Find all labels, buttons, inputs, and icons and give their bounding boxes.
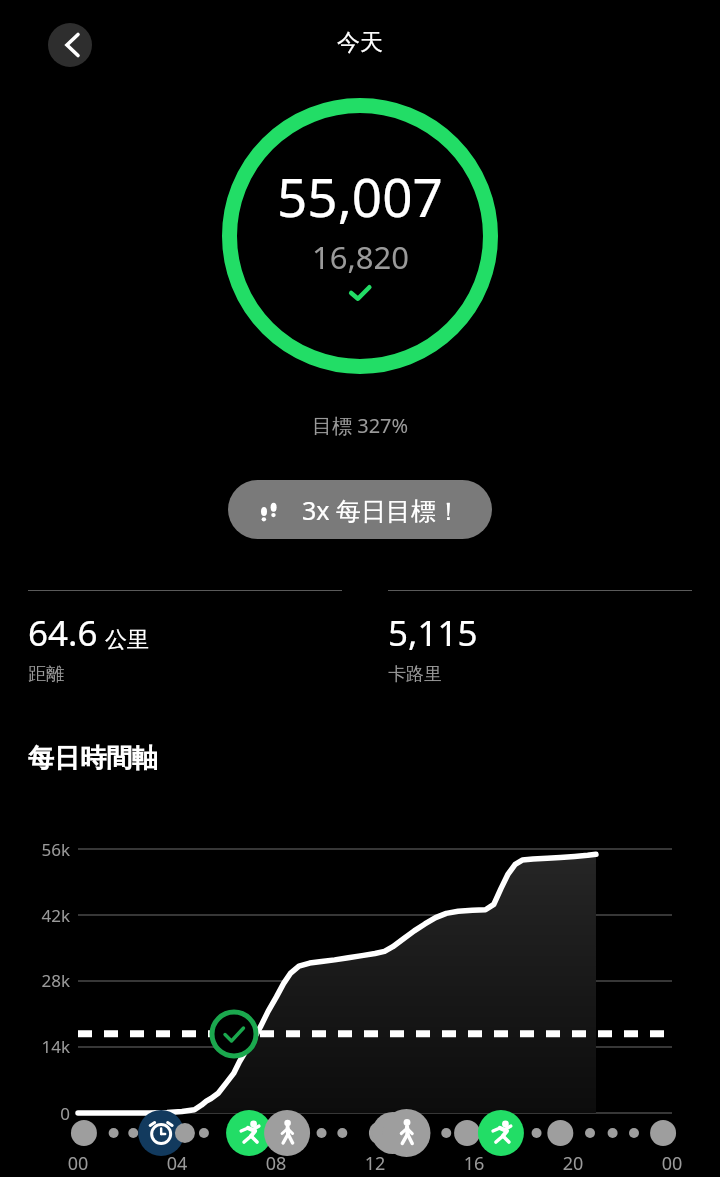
staticText: 距離 [28,663,64,686]
staticText: 16,820 [312,236,409,278]
staticText: 14k [24,1035,70,1058]
staticText: 12 [351,1151,399,1176]
button[interactable]: 5,115 [388,590,692,686]
staticText: 55,007 [277,160,443,232]
staticText: 42k [24,904,70,927]
staticText: 20 [549,1151,597,1176]
staticText: 56k [24,838,70,861]
staticText: 5,115 [388,609,478,657]
staticText: 公里 [105,626,149,654]
staticText: 16 [450,1151,498,1176]
staticText: 今天 [337,28,383,57]
button[interactable]: 64.6 [28,590,342,686]
staticText: 08 [252,1151,300,1176]
staticText: 卡路里 [388,663,442,686]
staticText: 0 [24,1102,70,1125]
staticText: 目標 327% [312,412,409,439]
button[interactable]: 3x 每日目標！ [228,480,492,539]
staticText: 每日時間軸 [28,742,158,775]
staticText: 64.6 [28,609,98,657]
button[interactable]: Back [48,23,92,67]
staticText: 04 [153,1151,201,1176]
staticText: 00 [648,1151,696,1176]
staticText: 3x 每日目標！ [302,493,462,527]
staticText: 28k [24,969,70,992]
staticText: 00 [54,1151,102,1176]
